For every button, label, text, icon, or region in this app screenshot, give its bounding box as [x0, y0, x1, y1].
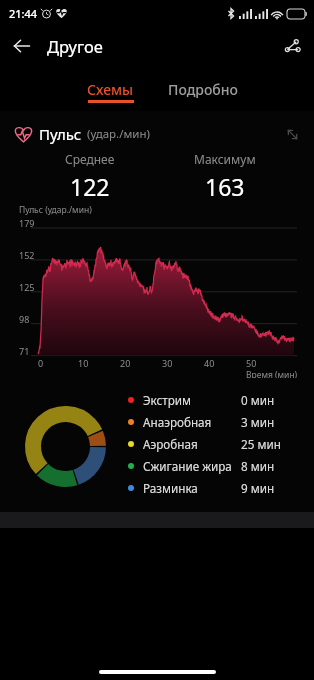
staticText: 179	[19, 217, 35, 229]
staticText: 152	[19, 249, 35, 261]
staticText: 25 мин	[241, 436, 281, 452]
button[interactable]: Сжигание жира	[128, 455, 275, 477]
staticText: 0 мин	[241, 392, 275, 408]
button[interactable]: Expand chart	[280, 122, 304, 146]
staticText: (удар./мин)	[87, 126, 150, 142]
staticText: 71	[19, 345, 30, 357]
staticText: 40	[204, 357, 215, 369]
staticText: Подробно	[168, 80, 239, 99]
staticText: Сжигание жира	[143, 458, 232, 474]
button[interactable]: Share	[275, 29, 309, 63]
staticText: Среднее	[65, 151, 115, 167]
staticText: 98	[19, 313, 30, 325]
staticText: 0	[38, 357, 44, 369]
staticText: 21:44	[9, 6, 38, 21]
staticText: Аэробная	[143, 436, 198, 452]
staticText: 3 мин	[241, 414, 275, 430]
button[interactable]: Подробно	[166, 66, 241, 100]
staticText: Анаэробная	[143, 414, 212, 430]
button[interactable]: Back	[5, 29, 39, 63]
staticText: 8 мин	[241, 458, 275, 474]
staticText: Пульс (удар./мин)	[19, 204, 92, 216]
staticText: Разминка	[143, 480, 198, 496]
button[interactable]: Разминка	[128, 477, 275, 499]
staticText: 50	[246, 357, 257, 369]
staticText: 20	[120, 357, 131, 369]
staticText: Максимум	[194, 151, 256, 167]
staticText: Время (мин)	[246, 369, 298, 378]
staticText: 163	[205, 171, 245, 202]
staticText: Экстрим	[143, 392, 192, 408]
button[interactable]: Схемы	[85, 66, 136, 103]
staticText: Схемы	[87, 80, 134, 99]
staticText: 10	[78, 357, 89, 369]
staticText: 30	[162, 357, 173, 369]
staticText: Пульс	[39, 124, 82, 144]
staticText: Другое	[47, 35, 103, 57]
button[interactable]: Аэробная	[128, 433, 281, 455]
staticText: 125	[19, 281, 35, 293]
staticText: 9 мин	[241, 480, 275, 496]
staticText: 122	[70, 171, 110, 202]
button[interactable]: Экстрим	[128, 389, 275, 411]
button[interactable]: Анаэробная	[128, 411, 275, 433]
